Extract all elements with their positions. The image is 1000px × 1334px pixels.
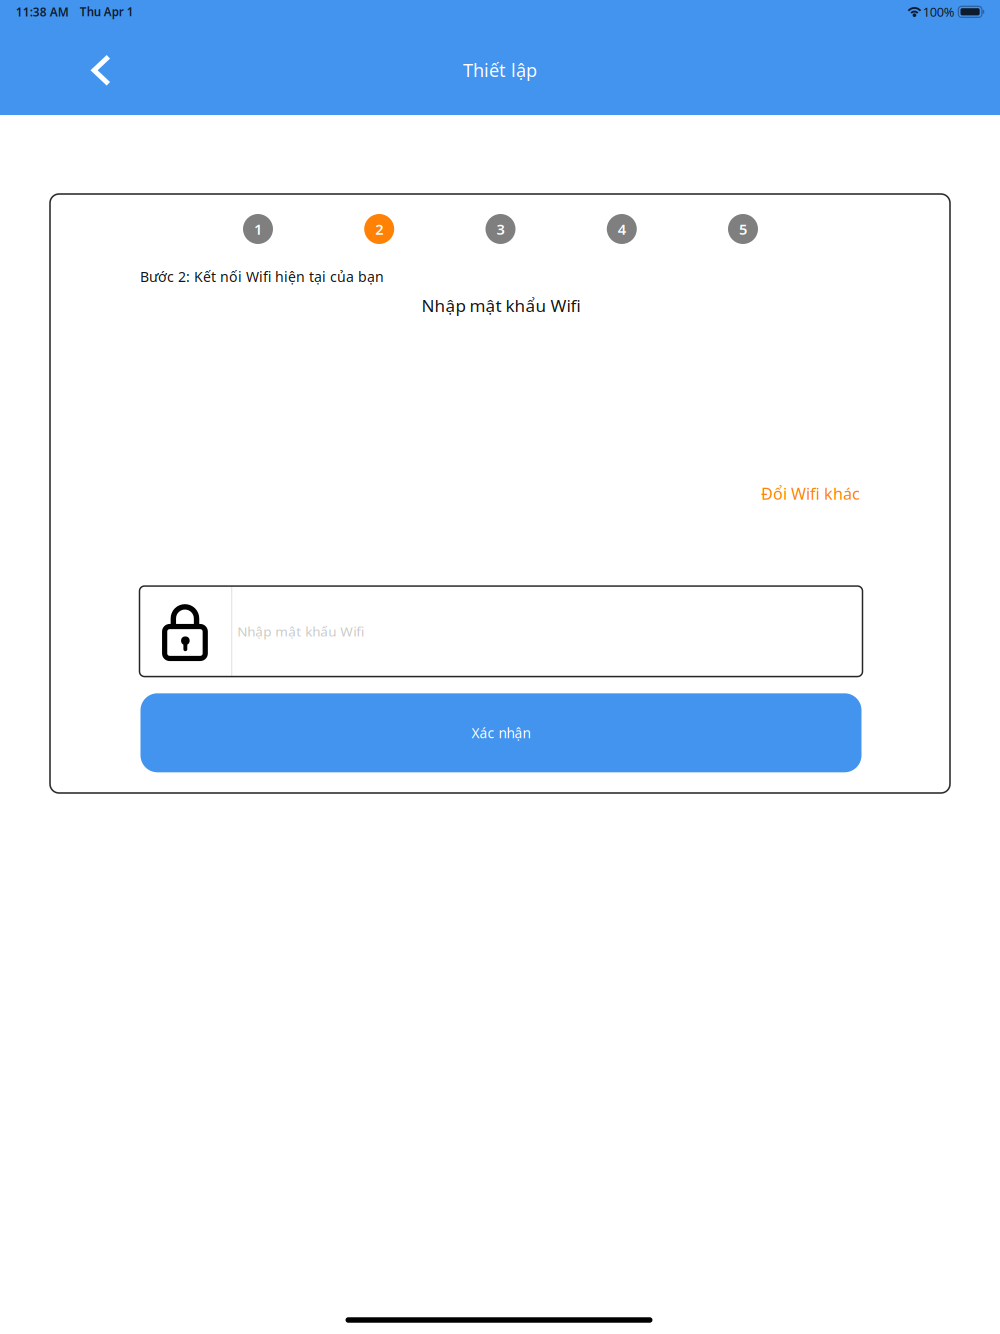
button[interactable]: Xác nhận <box>140 693 861 772</box>
staticText: Đổi Wifi khác <box>761 482 860 504</box>
staticText: Nhập mật khẩu Wifi <box>421 294 580 317</box>
staticText: 5 <box>739 219 747 239</box>
staticText: 1 <box>254 219 262 239</box>
staticText: 3 <box>496 219 504 239</box>
staticText: Thu Apr 1 <box>80 4 134 20</box>
staticText: Bước 2: Kết nối Wifi hiện tại của bạn <box>140 267 384 286</box>
staticText: 100% <box>923 3 955 20</box>
button[interactable]: Nhập mật khẩu Wifi <box>139 586 862 676</box>
staticText: Xác nhận <box>471 723 530 742</box>
staticText: Thiết lập <box>463 58 537 82</box>
staticText: 4 <box>618 219 626 239</box>
staticText: 2 <box>375 219 383 239</box>
staticText: Nhập mật khẩu Wifi <box>237 622 364 640</box>
staticText: 11:38 AM <box>16 4 69 20</box>
button[interactable]: Back <box>67 35 135 105</box>
button[interactable]: Đổi Wifi khác <box>660 476 860 510</box>
